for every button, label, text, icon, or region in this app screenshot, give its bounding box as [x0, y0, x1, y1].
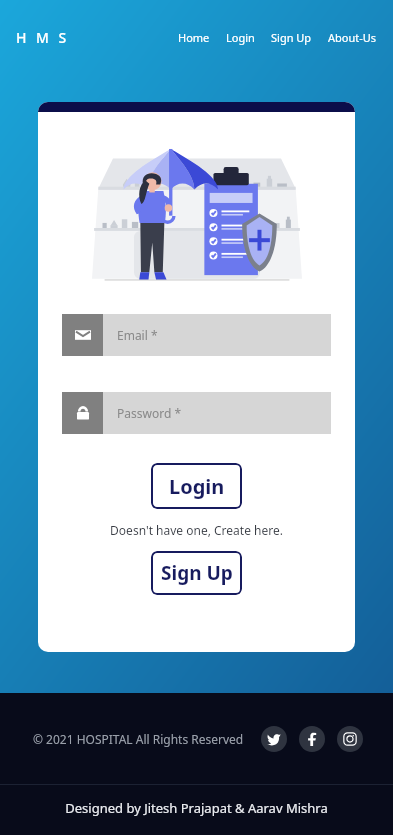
- staticText: Designed by Jitesh Prajapat & Aarav Mish…: [65, 799, 328, 817]
- staticText: © 2021 HOSPITAL All Rights Reserved: [33, 731, 244, 747]
- staticText: Login: [169, 473, 225, 500]
- button[interactable]: Facebook: [299, 726, 325, 752]
- staticText: Sign Up: [161, 560, 233, 586]
- staticText: Doesn't have one, Create here.: [110, 522, 283, 538]
- button[interactable]: H M S: [16, 24, 70, 51]
- staticText: About-Us: [328, 30, 377, 45]
- button[interactable]: Sign Up: [151, 551, 242, 595]
- button[interactable]: Instagram: [337, 726, 363, 752]
- button[interactable]: Sign Up: [269, 24, 314, 51]
- staticText: Home: [178, 30, 210, 45]
- staticText: Password *: [117, 405, 182, 421]
- button[interactable]: About-Us: [326, 24, 379, 51]
- staticText: Email *: [117, 327, 158, 343]
- button[interactable]: Login: [224, 24, 257, 51]
- button[interactable]: Password *: [62, 392, 331, 434]
- button[interactable]: Email *: [62, 314, 331, 356]
- button[interactable]: Home: [176, 24, 212, 51]
- staticText: Sign Up: [271, 30, 312, 45]
- staticText: Login: [226, 30, 255, 45]
- staticText: H M S: [16, 28, 70, 47]
- button[interactable]: Login: [151, 463, 242, 509]
- button[interactable]: Twitter: [261, 726, 287, 752]
